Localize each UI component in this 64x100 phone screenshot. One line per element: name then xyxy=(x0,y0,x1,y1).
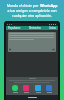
button[interactable]: Listas xyxy=(48,26,57,30)
staticText: Manda el chiste por xyxy=(7,3,40,8)
staticText: Recientes xyxy=(29,26,41,30)
button[interactable]: Populares xyxy=(7,26,22,30)
button[interactable]: Recientes xyxy=(28,26,42,30)
staticText: a tus amigos o compártelo con xyxy=(7,8,57,13)
button[interactable] xyxy=(8,32,56,52)
button[interactable]: WhatsApp xyxy=(12,85,18,93)
button[interactable]: Facebook xyxy=(46,85,52,93)
button[interactable]: Telegram xyxy=(35,85,41,93)
staticText: WhatsApp xyxy=(40,3,58,8)
staticText: Populares xyxy=(8,26,21,30)
staticText: Listas xyxy=(49,26,56,30)
staticText: cualquier otra aplicación. xyxy=(12,13,52,18)
button[interactable]: Instagram xyxy=(23,85,29,93)
button[interactable]: Home xyxy=(28,97,37,98)
